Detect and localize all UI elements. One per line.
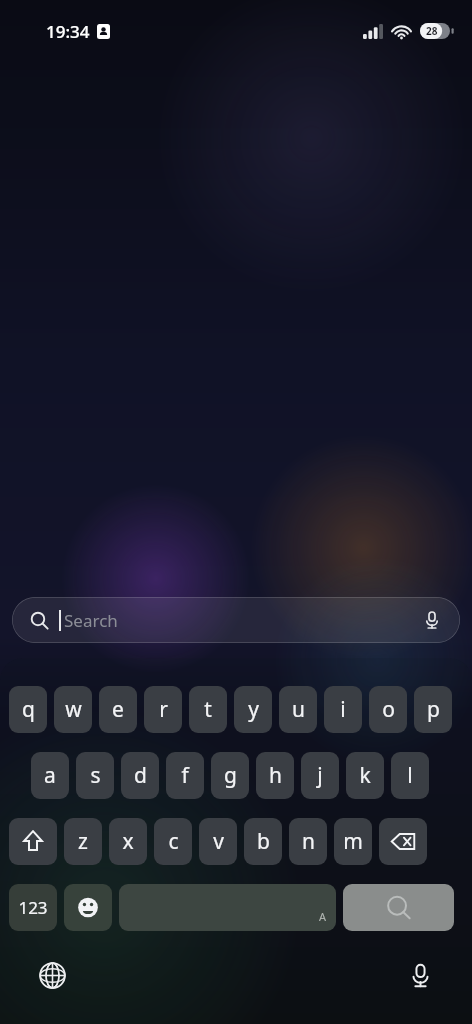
button[interactable]: n: [289, 818, 327, 865]
button[interactable]: Emoji: [64, 884, 112, 931]
staticText: o: [382, 695, 395, 724]
button[interactable]: o: [369, 686, 407, 733]
button[interactable]: l: [391, 752, 429, 799]
button[interactable]: 123: [9, 884, 57, 931]
staticText: x: [122, 827, 134, 856]
button[interactable]: m: [334, 818, 372, 865]
staticText: w: [65, 695, 82, 724]
staticText: j: [317, 761, 323, 790]
button[interactable]: w: [54, 686, 92, 733]
staticText: e: [112, 695, 124, 724]
button[interactable]: Search: [343, 884, 454, 931]
button[interactable]: Voice input: [398, 953, 442, 997]
button[interactable]: z: [64, 818, 102, 865]
staticText: p: [427, 695, 440, 724]
button[interactable]: e: [99, 686, 137, 733]
staticText: i: [340, 695, 346, 724]
staticText: y: [248, 695, 259, 724]
button[interactable]: d: [121, 752, 159, 799]
staticText: h: [269, 761, 282, 790]
button[interactable]: q: [9, 686, 47, 733]
button[interactable]: u: [279, 686, 317, 733]
staticText: 28: [426, 24, 438, 38]
staticText: c: [168, 827, 179, 856]
button[interactable]: Search: [12, 597, 460, 643]
staticText: d: [134, 761, 147, 790]
button[interactable]: h: [256, 752, 294, 799]
staticText: A: [319, 909, 327, 924]
button[interactable]: s: [76, 752, 114, 799]
staticText: s: [90, 761, 101, 790]
staticText: v: [213, 827, 224, 856]
staticText: 123: [18, 896, 48, 919]
staticText: u: [292, 695, 305, 724]
button[interactable]: c: [154, 818, 192, 865]
staticText: f: [181, 761, 189, 790]
staticText: Search: [64, 609, 118, 632]
staticText: n: [302, 827, 315, 856]
button[interactable]: Shift: [9, 818, 57, 865]
button[interactable]: t: [189, 686, 227, 733]
staticText: 19:34: [46, 20, 90, 43]
staticText: b: [257, 827, 270, 856]
staticText: q: [22, 695, 35, 724]
staticText: a: [44, 761, 56, 790]
button[interactable]: Change keyboard language: [30, 953, 74, 997]
button[interactable]: a: [31, 752, 69, 799]
staticText: t: [204, 695, 212, 724]
button[interactable]: b: [244, 818, 282, 865]
button[interactable]: p: [414, 686, 452, 733]
staticText: m: [343, 827, 363, 856]
button[interactable]: r: [144, 686, 182, 733]
button[interactable]: x: [109, 818, 147, 865]
button[interactable]: j: [301, 752, 339, 799]
button[interactable]: k: [346, 752, 384, 799]
button[interactable]: Space: [119, 884, 336, 931]
staticText: l: [407, 761, 413, 790]
button[interactable]: Backspace: [379, 818, 427, 865]
button[interactable]: y: [234, 686, 272, 733]
button[interactable]: g: [211, 752, 249, 799]
button[interactable]: Voice search: [420, 608, 444, 632]
staticText: g: [224, 761, 237, 790]
button[interactable]: v: [199, 818, 237, 865]
staticText: r: [159, 695, 168, 724]
staticText: k: [359, 761, 371, 790]
button[interactable]: f: [166, 752, 204, 799]
button[interactable]: i: [324, 686, 362, 733]
staticText: z: [78, 827, 88, 856]
